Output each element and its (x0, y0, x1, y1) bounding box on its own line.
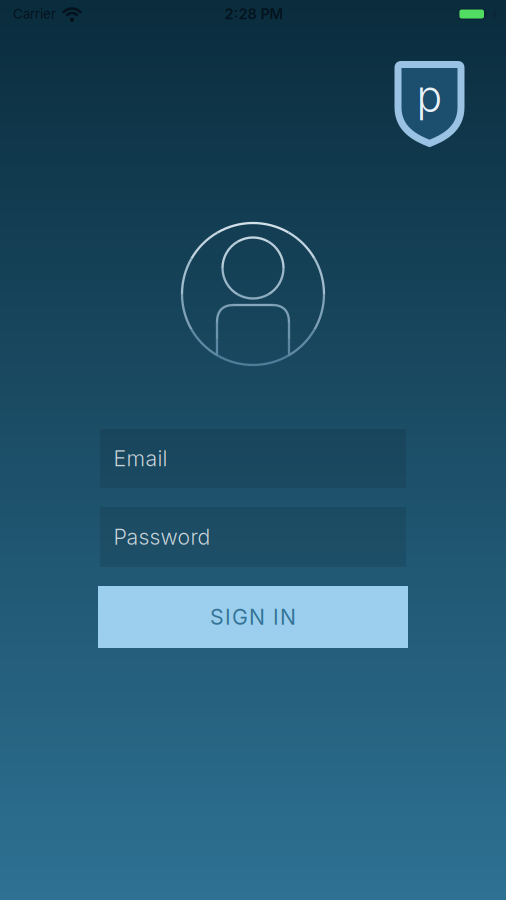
button[interactable]: Email (100, 429, 406, 488)
button[interactable]: Password (100, 507, 406, 567)
button[interactable]: SIGN IN (98, 586, 408, 648)
staticText: Carrier (13, 6, 56, 22)
staticText: SIGN IN (210, 604, 296, 630)
staticText: Password (113, 524, 210, 550)
staticText: Email (113, 446, 167, 471)
staticText: 2:28 PM (224, 5, 283, 23)
staticText: p (416, 71, 442, 121)
